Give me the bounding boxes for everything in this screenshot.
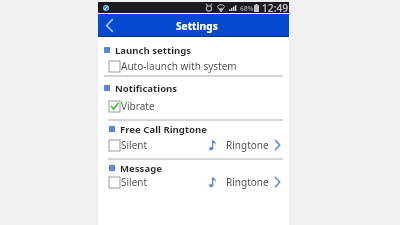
staticText: 12:49 bbox=[262, 1, 289, 12]
staticText: Free Call Ringtone bbox=[120, 123, 208, 136]
staticText: Vibrate bbox=[121, 99, 155, 113]
staticText: Launch settings bbox=[115, 44, 192, 57]
other: Choose ringtone bbox=[274, 176, 281, 188]
staticText: Ringtone bbox=[226, 138, 269, 152]
staticText: Ringtone bbox=[226, 175, 269, 189]
staticText: Notifications bbox=[115, 82, 178, 95]
button[interactable]: Silent bbox=[109, 138, 281, 152]
staticText: Silent bbox=[121, 138, 148, 152]
staticText: 68% bbox=[240, 4, 254, 13]
staticText: Message bbox=[120, 162, 162, 175]
button[interactable]: Vibrate bbox=[109, 99, 155, 113]
button[interactable]: Back bbox=[98, 14, 121, 37]
other: Choose ringtone bbox=[274, 139, 281, 151]
button[interactable]: Auto-launch with system bbox=[109, 59, 237, 73]
staticText: Settings bbox=[176, 19, 218, 33]
staticText: Auto-launch with system bbox=[121, 59, 237, 73]
button[interactable]: Silent bbox=[109, 175, 281, 189]
staticText: Silent bbox=[121, 175, 148, 189]
